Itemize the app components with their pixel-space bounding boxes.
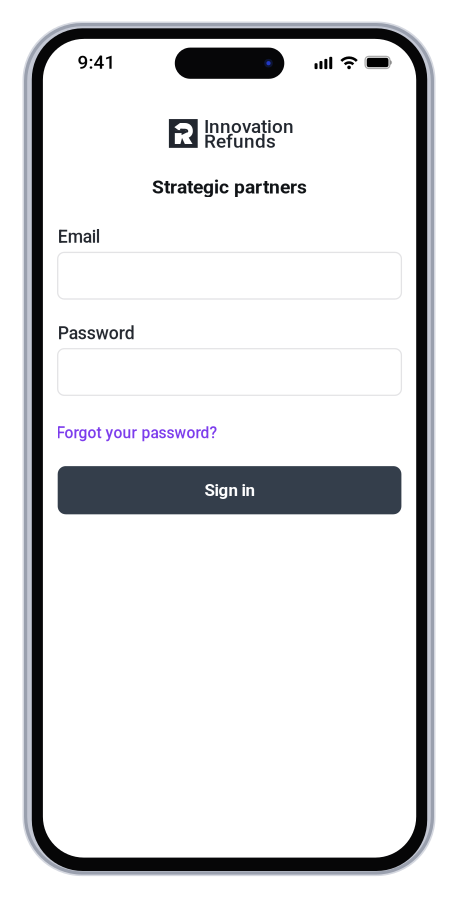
button[interactable] [58,252,401,299]
staticText: Password [58,323,135,343]
staticText: 9:41 [77,51,115,73]
staticText: Refunds [204,130,276,152]
staticText: Innovation [204,115,294,137]
button[interactable]: Forgot your password? [56,424,217,442]
staticText: Email [58,226,100,247]
staticText: Strategic partners [152,176,307,198]
staticText: Sign in [205,480,255,500]
staticText: Forgot your password? [56,424,217,442]
button[interactable]: Sign in [58,466,401,514]
